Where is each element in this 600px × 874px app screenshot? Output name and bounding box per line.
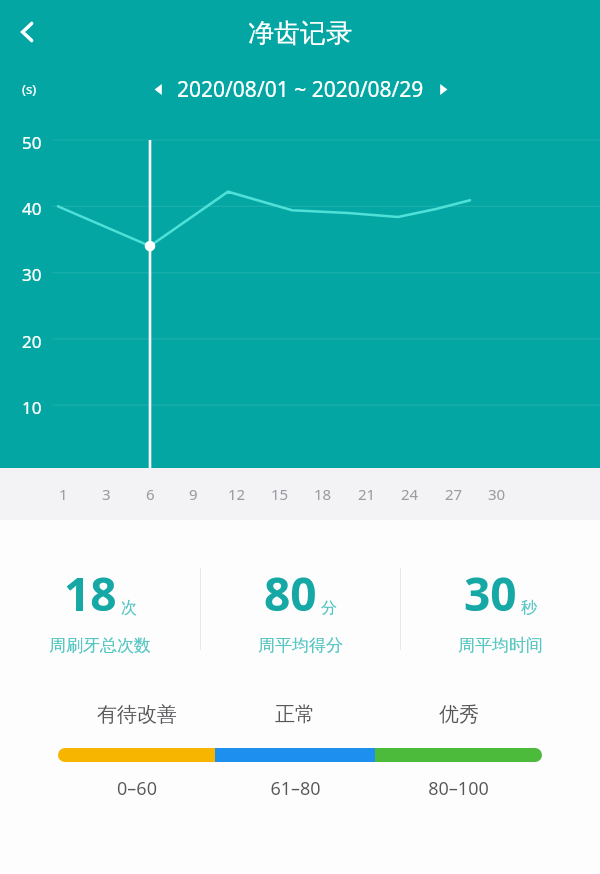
staticText: 周平均时间 xyxy=(458,635,543,656)
staticText: 周刷牙总次数 xyxy=(49,635,151,656)
staticText: 秒 xyxy=(521,598,537,618)
staticText: 18 xyxy=(314,484,332,504)
staticText: 6 xyxy=(146,484,155,504)
staticText: 21 xyxy=(358,484,376,504)
staticText: 30 xyxy=(22,263,42,286)
staticText: 净齿记录 xyxy=(248,17,352,50)
staticText: 18 xyxy=(64,562,117,625)
button[interactable]: Next period xyxy=(428,74,458,104)
staticText: 0–60 xyxy=(117,776,157,801)
staticText: (s) xyxy=(22,80,37,98)
staticText: 1 xyxy=(59,484,68,504)
staticText: 40 xyxy=(22,197,42,220)
staticText: 优秀 xyxy=(439,702,479,727)
button[interactable]: 80 xyxy=(201,562,400,656)
button[interactable]: Back xyxy=(3,8,51,56)
staticText: 30 xyxy=(488,484,506,504)
staticText: 3 xyxy=(102,484,111,504)
staticText: 20 xyxy=(22,330,42,353)
staticText: 80 xyxy=(264,562,317,625)
staticText: 24 xyxy=(401,484,419,504)
staticText: 50 xyxy=(22,131,42,154)
staticText: 12 xyxy=(228,484,246,504)
staticText: 27 xyxy=(445,484,463,504)
staticText: 分 xyxy=(321,598,337,618)
staticText: 15 xyxy=(271,484,289,504)
staticText: 80–100 xyxy=(428,776,489,801)
staticText: 10 xyxy=(22,396,42,419)
staticText: 61–80 xyxy=(270,776,321,801)
staticText: 正常 xyxy=(275,702,315,727)
button[interactable]: 18 xyxy=(0,562,200,656)
button[interactable]: Previous period xyxy=(143,74,173,104)
staticText: 30 xyxy=(464,562,517,625)
button[interactable]: 30 xyxy=(401,562,600,656)
staticText: 周平均得分 xyxy=(258,635,343,656)
staticText: 有待改善 xyxy=(97,702,177,727)
staticText: 2020/08/01 ~ 2020/08/29 xyxy=(177,75,424,104)
staticText: 次 xyxy=(121,598,137,618)
staticText: 9 xyxy=(189,484,198,504)
